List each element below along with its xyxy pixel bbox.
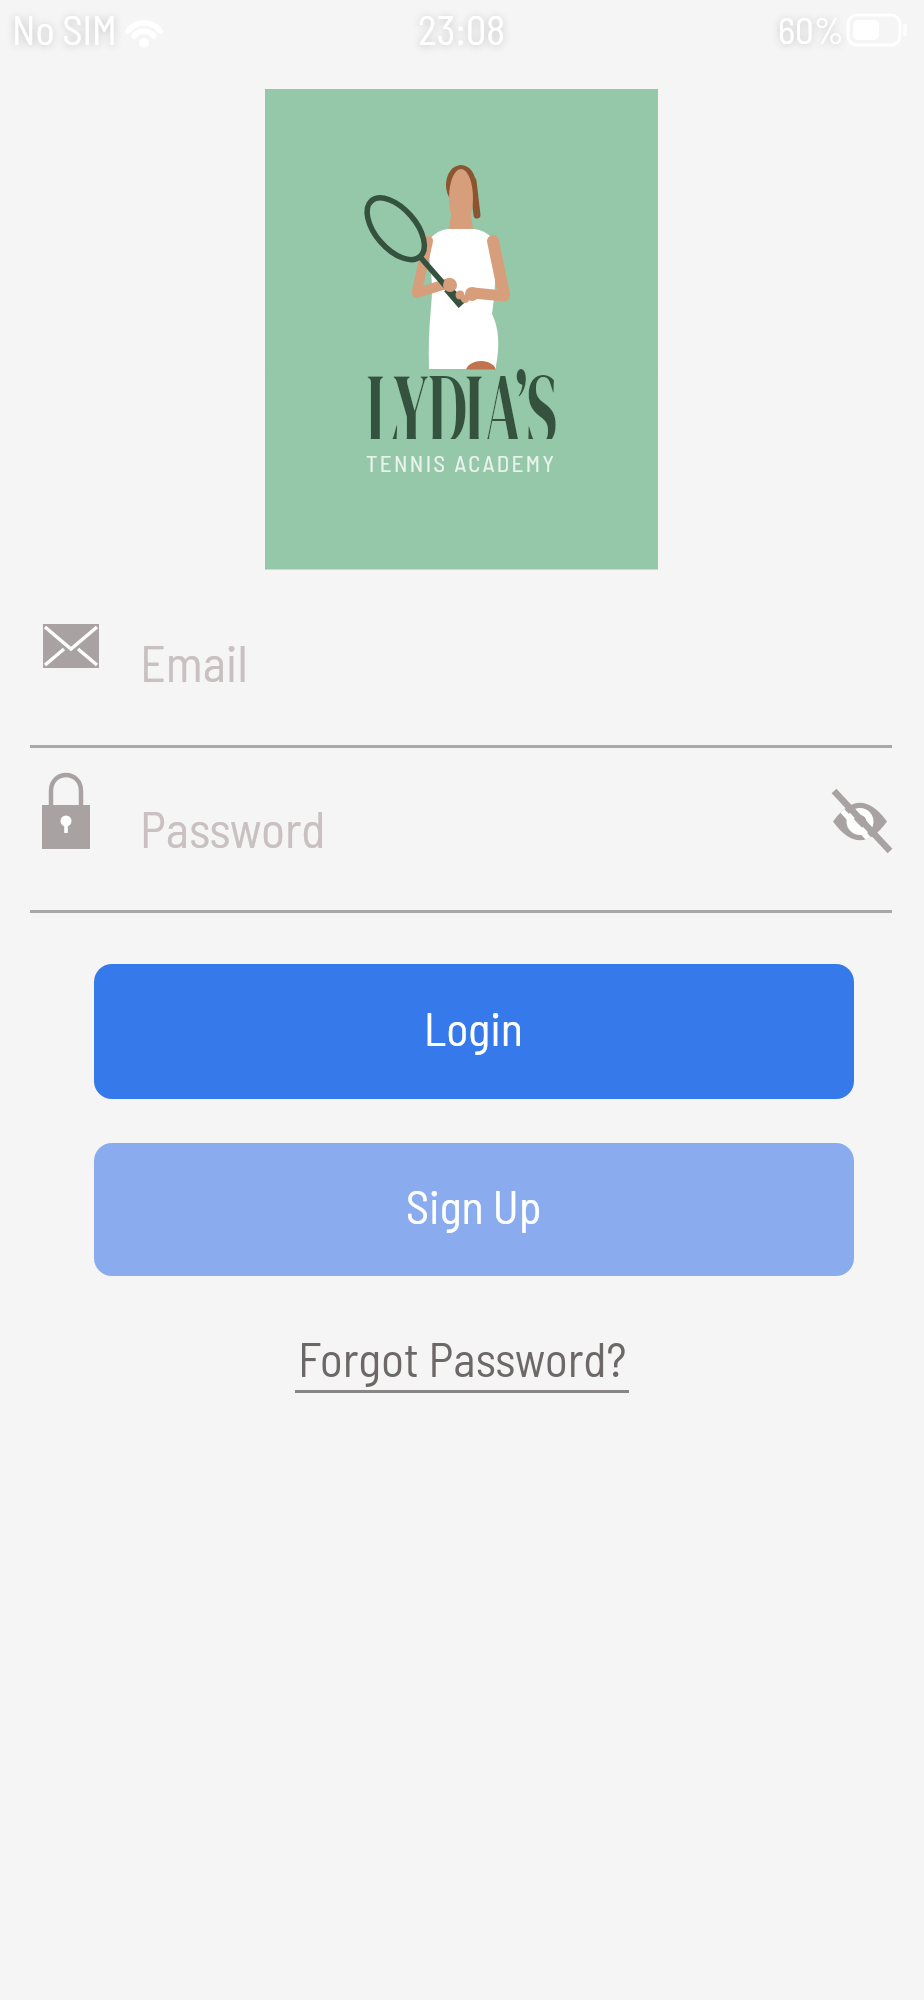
staticText: No SIM [12,5,117,53]
button[interactable]: Email [30,600,894,745]
staticText: 60% [778,7,844,51]
staticText: TENNIS ACADEMY [366,449,557,477]
staticText: Email [140,632,248,692]
button[interactable] [829,788,891,854]
staticText: LYDIA’S [366,339,557,439]
button[interactable]: Login [94,964,854,1099]
button[interactable]: Forgot Password? [298,1329,627,1387]
button[interactable]: Password [30,748,894,910]
staticText: 23:08 [418,5,506,53]
staticText: Password [140,798,326,858]
button[interactable]: Sign Up [94,1143,854,1276]
staticText: Forgot Password? [298,1329,627,1387]
staticText: Sign Up [406,1178,542,1233]
staticText: Login [424,1000,524,1055]
